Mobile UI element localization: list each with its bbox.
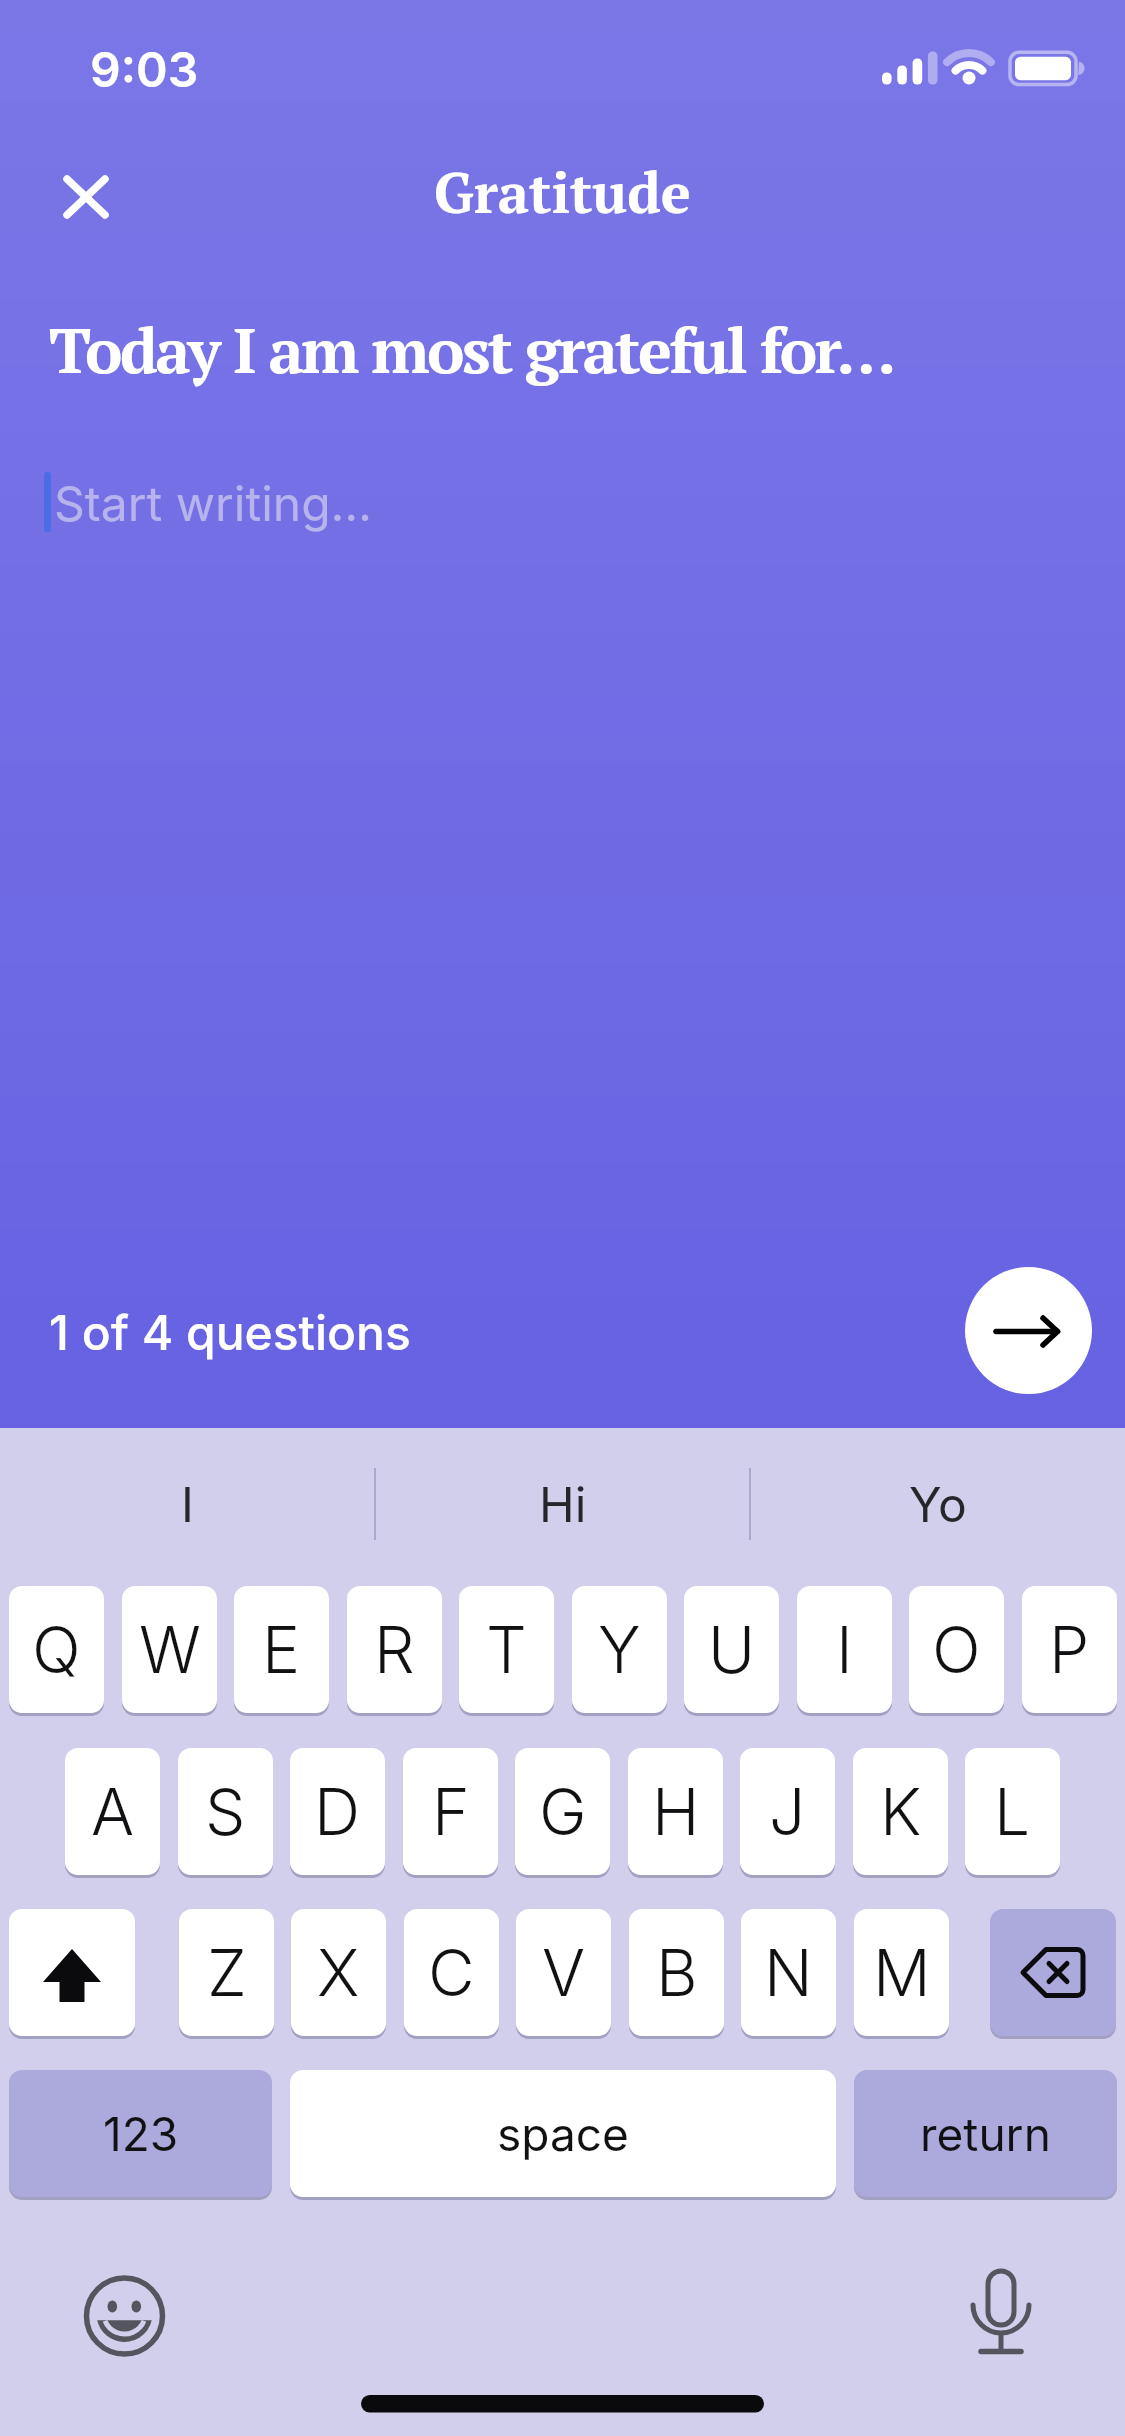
button[interactable]: N [741, 1909, 836, 2036]
staticText: L [994, 1773, 1031, 1850]
staticText: G [539, 1773, 587, 1850]
button[interactable]: C [404, 1909, 499, 2036]
button[interactable]: I [0, 1452, 375, 1556]
button[interactable]: B [629, 1909, 724, 2036]
button[interactable]: space [290, 2070, 836, 2197]
staticText: R [374, 1611, 415, 1688]
button[interactable]: R [347, 1586, 442, 1713]
staticText: F [432, 1773, 470, 1850]
button[interactable]: S [178, 1748, 273, 1875]
button[interactable]: Hi [375, 1452, 750, 1556]
button[interactable]: F [403, 1748, 498, 1875]
staticText: I [836, 1611, 853, 1688]
button[interactable]: T [459, 1586, 554, 1713]
staticText: 1 of 4 questions [49, 1303, 411, 1361]
button[interactable]: Z [179, 1909, 274, 2036]
button[interactable] [990, 1909, 1116, 2036]
button[interactable]: E [234, 1586, 329, 1713]
staticText: K [880, 1773, 922, 1850]
staticText: N [764, 1934, 813, 2011]
staticText: P [1049, 1611, 1090, 1688]
button[interactable]: Y [572, 1586, 667, 1713]
button[interactable]: L [965, 1748, 1060, 1875]
button[interactable]: Q [9, 1586, 104, 1713]
staticText: Q [32, 1611, 81, 1688]
button[interactable]: I [797, 1586, 892, 1713]
staticText: B [656, 1934, 698, 2011]
staticText: C [428, 1934, 475, 2011]
staticText: Y [598, 1611, 641, 1688]
button[interactable]: J [740, 1748, 835, 1875]
button[interactable]: 123 [9, 2070, 272, 2197]
staticText: D [314, 1773, 361, 1850]
button[interactable]: H [628, 1748, 723, 1875]
button[interactable]: D [290, 1748, 385, 1875]
button[interactable]: V [516, 1909, 611, 2036]
staticText: V [542, 1934, 586, 2011]
staticText: O [932, 1611, 981, 1688]
staticText: X [317, 1934, 360, 2011]
staticText: U [708, 1611, 756, 1688]
button[interactable]: Yo [750, 1452, 1125, 1556]
staticText: S [205, 1773, 246, 1850]
staticText: A [91, 1773, 135, 1850]
button[interactable]: W [122, 1586, 217, 1713]
staticText: Hi [539, 1475, 587, 1533]
staticText: W [139, 1611, 201, 1688]
staticText: Yo [909, 1475, 967, 1533]
staticText: E [262, 1611, 301, 1688]
button[interactable]: A [65, 1748, 160, 1875]
staticText: Today I am most grateful for… [49, 308, 894, 391]
staticText: H [652, 1773, 700, 1850]
button[interactable]: P [1022, 1586, 1117, 1713]
button[interactable]: K [853, 1748, 948, 1875]
staticText: T [486, 1611, 527, 1688]
staticText: 123 [103, 2106, 179, 2162]
staticText: Gratitude [434, 155, 691, 229]
staticText: 9:03 [90, 40, 199, 98]
staticText: M [873, 1934, 931, 2011]
staticText: Start writing… [54, 474, 373, 532]
button[interactable]: O [909, 1586, 1004, 1713]
button[interactable]: return [854, 2070, 1117, 2197]
staticText: I [181, 1475, 194, 1533]
button[interactable] [9, 1909, 135, 2036]
button[interactable]: X [291, 1909, 386, 2036]
staticText: J [769, 1773, 806, 1850]
button[interactable]: U [684, 1586, 779, 1713]
button[interactable]: M [854, 1909, 949, 2036]
button[interactable]: G [515, 1748, 610, 1875]
button[interactable] [48, 160, 124, 236]
button[interactable] [965, 1267, 1092, 1394]
staticText: Z [207, 1934, 247, 2011]
staticText: space [497, 2106, 629, 2162]
staticText: return [920, 2106, 1051, 2162]
